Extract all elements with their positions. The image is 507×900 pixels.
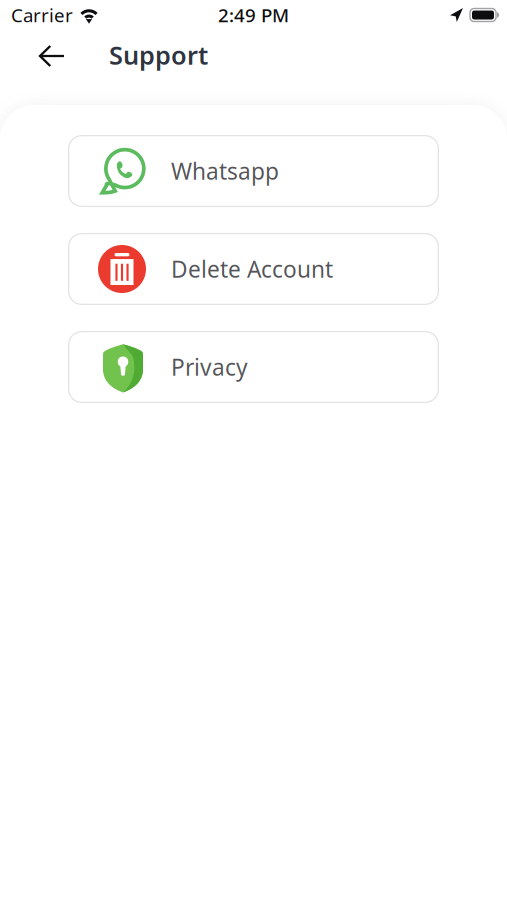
button[interactable]: Whatsapp: [68, 135, 439, 207]
staticText: 2:49 PM: [218, 3, 289, 27]
staticText: Privacy: [171, 352, 248, 382]
staticText: Whatsapp: [171, 156, 279, 186]
button[interactable]: Back: [26, 33, 77, 79]
button[interactable]: Privacy: [68, 331, 439, 403]
button[interactable]: Delete Account: [68, 233, 439, 305]
staticText: Support: [109, 38, 208, 72]
staticText: Delete Account: [171, 254, 333, 284]
staticText: Carrier: [11, 3, 73, 27]
